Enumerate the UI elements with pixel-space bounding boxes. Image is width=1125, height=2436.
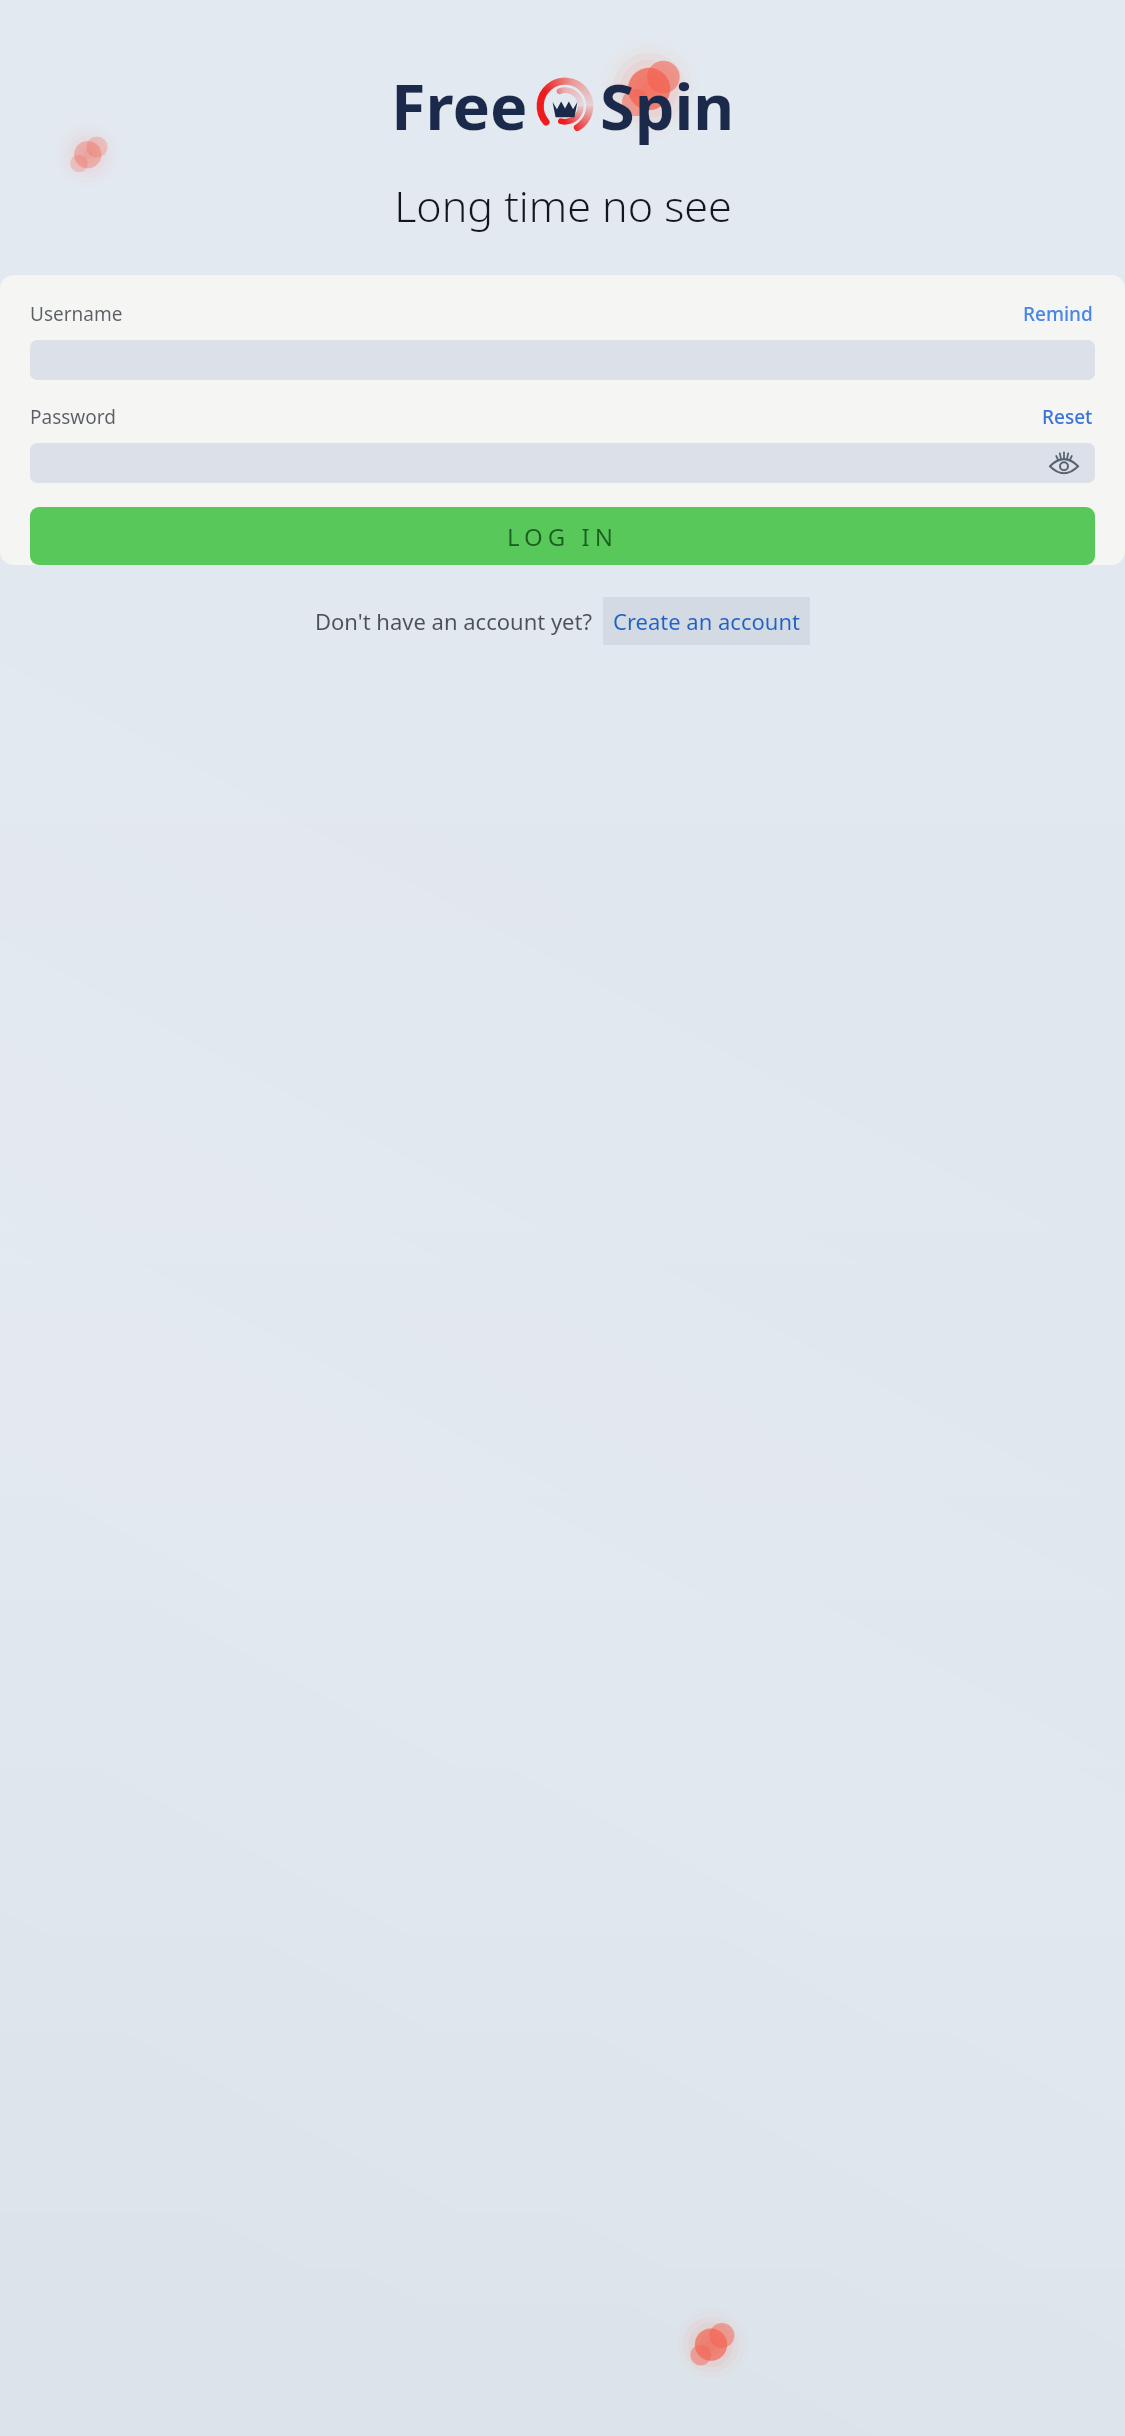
button[interactable]: Show password	[1047, 446, 1081, 480]
staticText: Password	[30, 404, 116, 430]
button[interactable]: LOG IN	[30, 507, 1095, 565]
staticText: Remind	[1023, 301, 1093, 327]
staticText: Create an account	[613, 606, 800, 636]
staticText: LOG IN	[507, 520, 618, 553]
staticText: Free	[391, 63, 528, 149]
button[interactable]: Remind	[1021, 299, 1095, 329]
button[interactable]: Create an account	[603, 597, 810, 645]
staticText: Reset	[1042, 404, 1093, 430]
button[interactable]: Reset	[1040, 402, 1095, 432]
button[interactable]: Show password	[30, 443, 1095, 483]
staticText: Username	[30, 301, 123, 327]
staticText: Don't have an account yet?	[315, 606, 593, 636]
staticText: Spin	[600, 63, 735, 149]
staticText: Long time no see	[394, 176, 732, 235]
